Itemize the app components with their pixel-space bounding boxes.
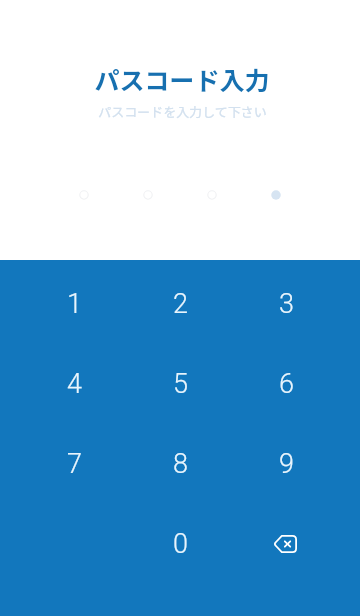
staticText: 8 (173, 448, 188, 480)
button[interactable]: 3 (233, 264, 339, 344)
button[interactable]: 7 (21, 424, 127, 504)
staticText: パスコードを入力して下さい (98, 102, 267, 121)
button[interactable]: 6 (233, 344, 339, 424)
button[interactable]: 0 (127, 504, 233, 584)
button[interactable]: 1 (21, 264, 127, 344)
button[interactable]: 8 (127, 424, 233, 504)
button[interactable]: 2 (127, 264, 233, 344)
staticText: 0 (173, 528, 188, 560)
button[interactable]: 9 (233, 424, 339, 504)
button[interactable]: Backspace (233, 504, 339, 584)
staticText: 4 (67, 368, 82, 400)
other: Backspace (273, 535, 297, 553)
staticText: 7 (67, 448, 82, 480)
button[interactable]: 4 (21, 344, 127, 424)
staticText: 3 (279, 288, 294, 320)
staticText: 2 (173, 288, 188, 320)
button[interactable]: 5 (127, 344, 233, 424)
staticText: 9 (279, 448, 294, 480)
staticText: 1 (67, 288, 82, 320)
staticText: パスコード入力 (94, 61, 270, 97)
staticText: 6 (279, 368, 294, 400)
staticText: 5 (173, 368, 188, 400)
